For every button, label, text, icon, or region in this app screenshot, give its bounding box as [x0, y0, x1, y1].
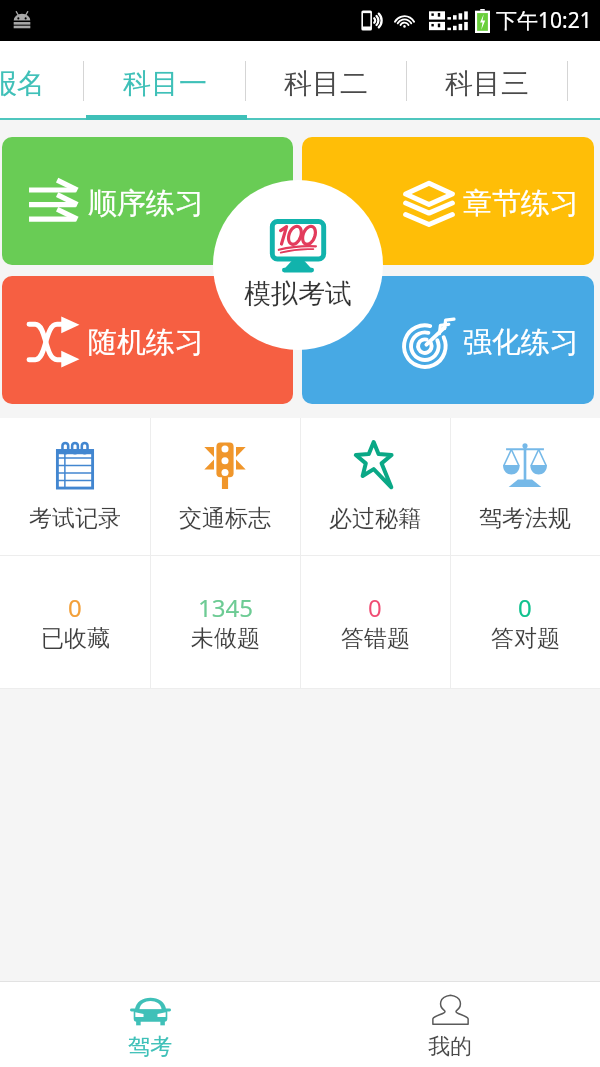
staticText: 顺序练习 — [88, 185, 204, 222]
button[interactable]: 交通标志 — [150, 418, 300, 556]
staticText: 答错题 — [341, 624, 410, 653]
staticText: 科目二 — [284, 66, 368, 101]
button[interactable]: 0 — [0, 556, 150, 689]
staticText: 科目一 — [123, 66, 207, 101]
button[interactable]: 科目二 — [246, 41, 406, 120]
button[interactable]: 驾考法规 — [450, 418, 600, 556]
staticText: 已收藏 — [41, 624, 110, 653]
button[interactable]: 章节练习 — [302, 137, 594, 265]
staticText: 0 — [68, 591, 82, 624]
staticText: 考试记录 — [29, 504, 121, 533]
button[interactable]: 模拟考试 — [213, 180, 383, 350]
staticText: 未做题 — [191, 624, 260, 653]
button[interactable]: 科目一 — [84, 41, 245, 120]
staticText: 下午10:21 — [496, 6, 592, 35]
button[interactable]: 强化练习 — [302, 276, 594, 404]
staticText: 必过秘籍 — [329, 504, 421, 533]
staticText: 1345 — [198, 591, 253, 624]
button[interactable]: 科目三 — [407, 41, 567, 120]
staticText: 驾考 — [128, 1033, 172, 1061]
staticText: 驾考法规 — [479, 504, 571, 533]
staticText: 报名 — [0, 66, 45, 101]
staticText: 模拟考试 — [244, 277, 352, 311]
button[interactable]: 0 — [300, 556, 450, 689]
staticText: 0 — [368, 591, 382, 624]
staticText: 强化练习 — [463, 324, 579, 361]
button[interactable]: 我的 — [300, 982, 600, 1050]
button[interactable]: 顺序练习 — [2, 137, 293, 265]
button[interactable]: 科目四 — [568, 41, 600, 120]
button[interactable]: 随机练习 — [2, 276, 293, 404]
staticText: 章节练习 — [463, 185, 579, 222]
staticText: 科目三 — [445, 66, 529, 101]
staticText: 0 — [518, 591, 532, 624]
button[interactable]: 必过秘籍 — [300, 418, 450, 556]
staticText: 随机练习 — [88, 324, 204, 361]
button[interactable]: 驾考 — [0, 982, 300, 1050]
button[interactable]: 1345 — [150, 556, 300, 689]
staticText: 交通标志 — [179, 504, 271, 533]
button[interactable]: 0 — [450, 556, 600, 689]
button[interactable]: 考试记录 — [0, 418, 150, 556]
staticText: 我的 — [428, 1033, 472, 1061]
staticText: 答对题 — [491, 624, 560, 653]
button[interactable]: 报名 — [0, 41, 83, 120]
